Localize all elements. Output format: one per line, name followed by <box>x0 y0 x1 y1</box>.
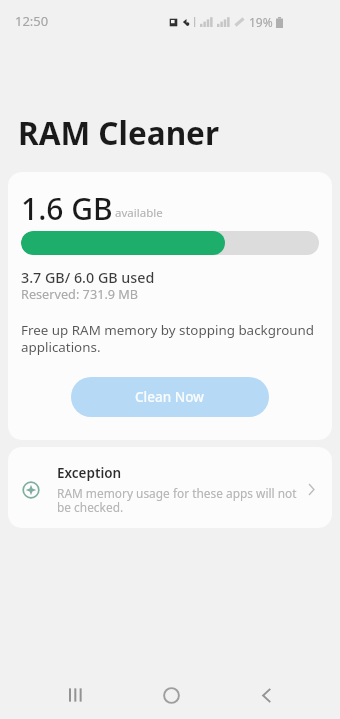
button[interactable]: Exception <box>8 447 332 528</box>
staticText: Reserved: 731.9 MB <box>21 285 139 302</box>
staticText: 1.6 GB <box>21 188 113 229</box>
staticText: 12:50 <box>15 12 49 30</box>
staticText: Free up RAM memory by stopping backgroun… <box>21 321 319 355</box>
staticText: Exception <box>57 464 122 482</box>
staticText: 3.7 GB/ 6.0 GB used <box>21 268 155 287</box>
staticText: RAM Cleaner <box>18 111 220 154</box>
button[interactable]: Clean Now <box>71 377 269 417</box>
button[interactable]: Back <box>236 678 296 712</box>
staticText: available <box>115 205 163 221</box>
staticText: RAM memory usage for these apps will not… <box>57 485 302 515</box>
staticText: Clean Now <box>135 388 205 406</box>
button[interactable]: Home <box>141 678 201 712</box>
button[interactable]: Recent apps <box>46 678 106 712</box>
staticText: 19% <box>249 14 273 30</box>
